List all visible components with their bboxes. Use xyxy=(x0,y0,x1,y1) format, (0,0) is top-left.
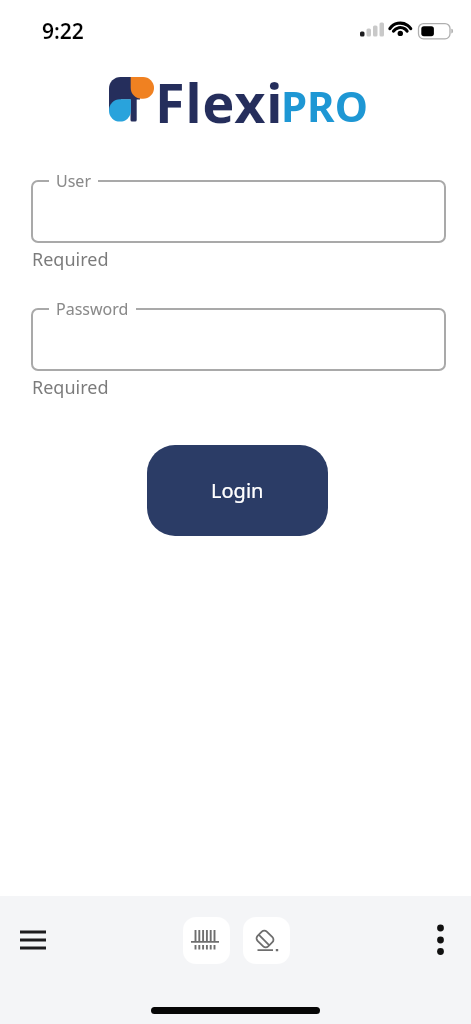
button[interactable] xyxy=(425,920,457,960)
button[interactable] xyxy=(31,308,446,371)
button[interactable] xyxy=(183,917,230,964)
staticText: 9:22 xyxy=(42,17,84,46)
staticText: Flexi xyxy=(155,65,284,139)
staticText: User xyxy=(56,170,91,190)
button[interactable] xyxy=(14,922,52,958)
staticText: Required xyxy=(32,247,109,272)
button[interactable] xyxy=(31,180,446,243)
button[interactable]: Login xyxy=(147,445,328,536)
staticText: Login xyxy=(211,477,264,504)
staticText: Password xyxy=(56,298,129,318)
staticText: PRO xyxy=(281,77,368,134)
staticText: Required xyxy=(32,375,109,400)
button[interactable] xyxy=(243,917,290,964)
